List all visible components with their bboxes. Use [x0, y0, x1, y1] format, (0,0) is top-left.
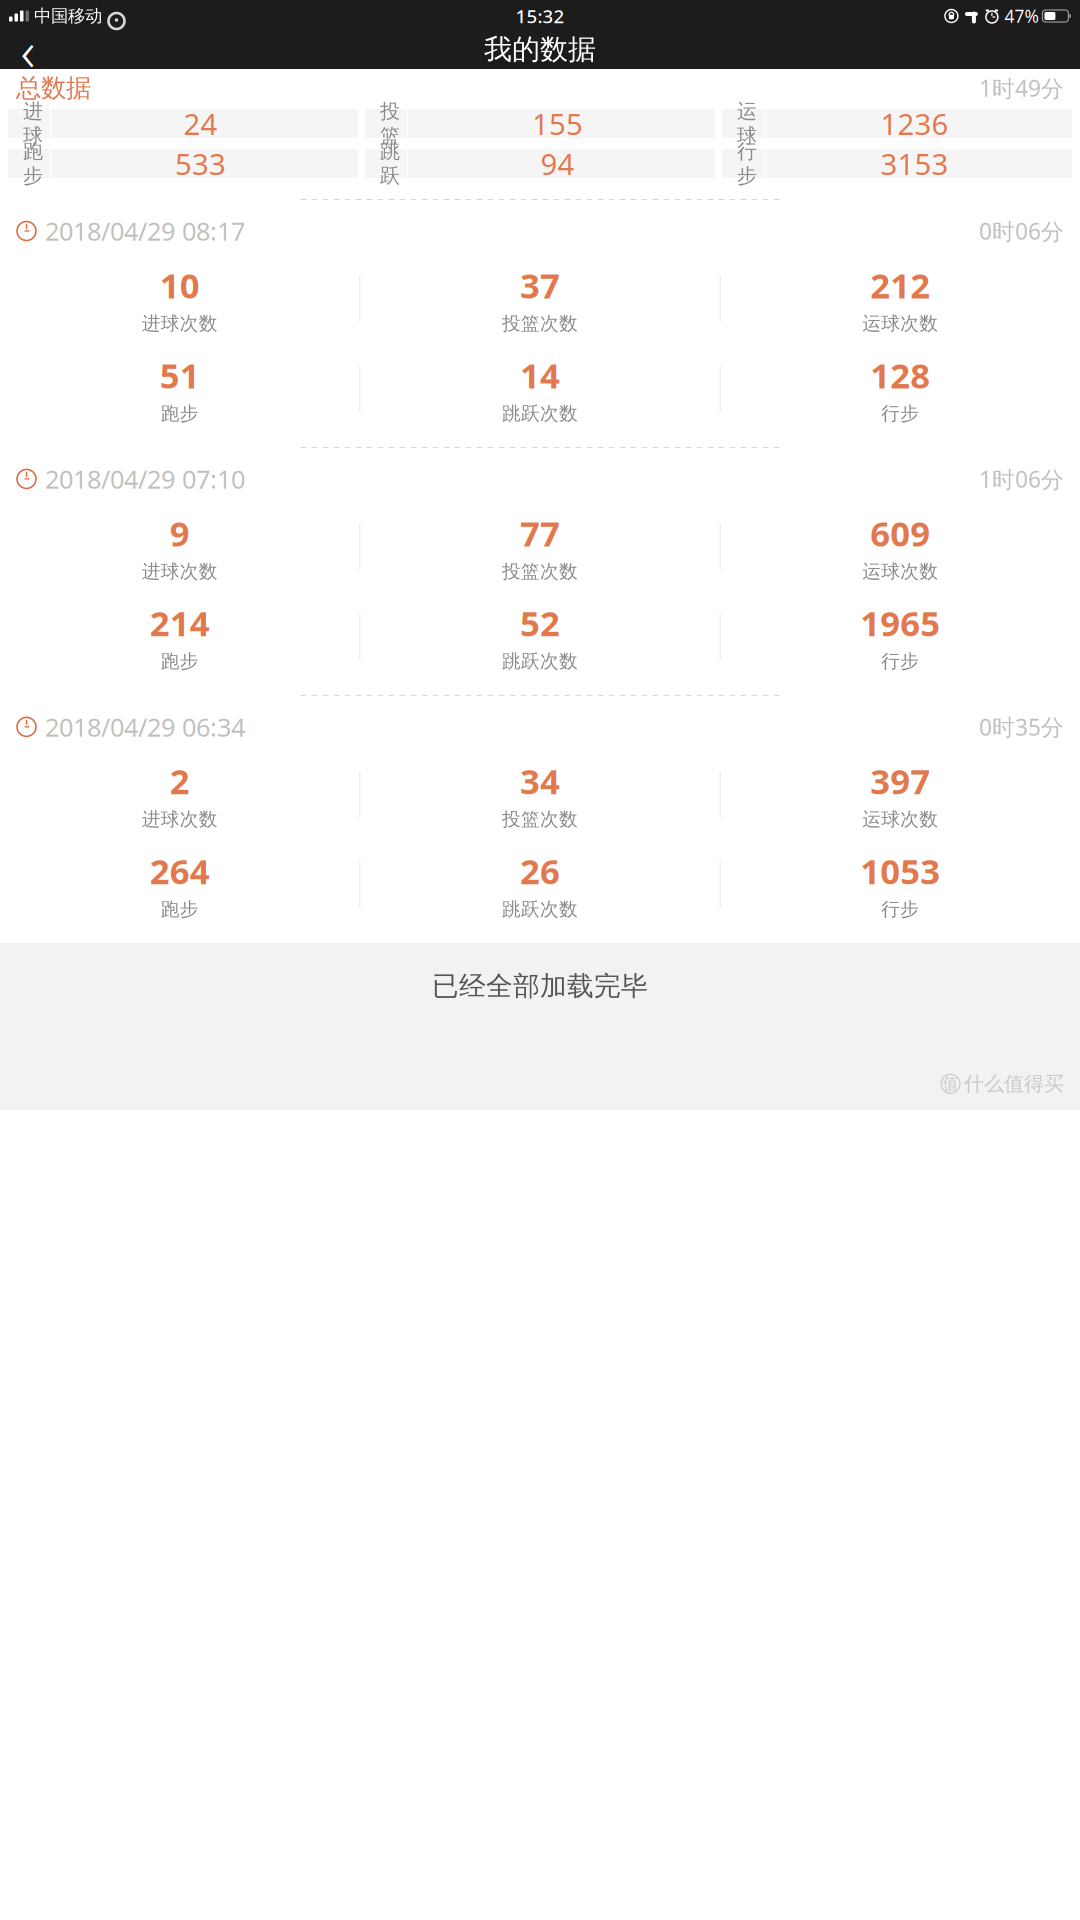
staticText: 跳跃次数 [502, 898, 578, 921]
staticText: 跑步 [23, 139, 43, 188]
staticText: 运球次数 [862, 312, 938, 335]
staticText: 投篮次数 [502, 312, 578, 335]
staticText: 跳跃次数 [502, 402, 578, 425]
button[interactable]: 返回 [0, 29, 56, 69]
staticText: 中国移动 [34, 5, 102, 27]
button[interactable]: 投篮 [365, 109, 715, 138]
staticText: 1053 [860, 848, 940, 894]
staticText: ‹ [20, 12, 35, 87]
staticText: 跳跃次数 [502, 650, 578, 673]
staticText: 投篮次数 [502, 808, 578, 831]
staticText: 2018/04/29 08:17 [45, 214, 245, 248]
staticText: 已经全部加载完毕 [432, 970, 648, 1003]
staticText: 0时35分 [979, 712, 1064, 742]
staticText: 运球次数 [862, 808, 938, 831]
staticText: 1时49分 [979, 73, 1064, 103]
button[interactable]: 2018/04/29 06:34 [0, 696, 1080, 758]
staticText: 进球次数 [142, 560, 218, 583]
button[interactable]: 行步 [722, 149, 1072, 178]
staticText: 1时06分 [979, 464, 1064, 494]
staticText: 9 [170, 510, 190, 556]
staticText: 进球次数 [142, 312, 218, 335]
staticText: 0时06分 [979, 216, 1064, 246]
staticText: 跑步 [161, 898, 199, 921]
staticText: 我的数据 [484, 32, 596, 67]
staticText: 212 [870, 262, 930, 308]
button[interactable]: 跑步 [8, 149, 358, 178]
staticText: 2018/04/29 07:10 [45, 462, 245, 496]
staticText: 52 [520, 600, 560, 646]
staticText: 1236 [880, 104, 948, 143]
staticText: 14 [520, 352, 560, 398]
staticText: 397 [870, 758, 930, 804]
staticText: 投篮次数 [502, 560, 578, 583]
staticText: 47% [1004, 4, 1038, 27]
staticText: 总数据 [16, 72, 91, 103]
staticText: 跳跃 [380, 139, 400, 188]
staticText: 1965 [860, 600, 940, 646]
staticText: 投篮 [380, 99, 400, 148]
staticText: 运球次数 [862, 560, 938, 583]
staticText: 行步 [737, 139, 757, 188]
staticText: 10 [160, 262, 200, 308]
staticText: 跑步 [161, 402, 199, 425]
staticText: 34 [520, 758, 560, 804]
staticText: 77 [520, 510, 560, 556]
button[interactable]: 进球 [8, 109, 358, 138]
staticText: 行步 [881, 402, 919, 425]
staticText: 533 [175, 144, 226, 183]
staticText: 跑步 [161, 650, 199, 673]
staticText: 2018/04/29 06:34 [45, 710, 245, 744]
staticText: 264 [150, 848, 210, 894]
staticText: 214 [150, 600, 210, 646]
staticText: 51 [160, 352, 200, 398]
staticText: 什么值得买 [964, 1071, 1064, 1096]
staticText: 行步 [881, 650, 919, 673]
button[interactable]: 运球 [722, 109, 1072, 138]
staticText: 进球次数 [142, 808, 218, 831]
button[interactable]: 跳跃 [365, 149, 715, 178]
staticText: 运球 [737, 99, 757, 148]
staticText: 94 [540, 144, 574, 183]
staticText: 值 [942, 1074, 958, 1094]
staticText: 3153 [880, 144, 948, 183]
staticText: 15:32 [515, 4, 564, 28]
staticText: 37 [520, 262, 560, 308]
staticText: 26 [520, 848, 560, 894]
button[interactable]: 2018/04/29 07:10 [0, 448, 1080, 510]
button[interactable]: 2018/04/29 08:17 [0, 200, 1080, 262]
staticText: 609 [870, 510, 930, 556]
staticText: 进球 [23, 99, 43, 148]
staticText: 2 [170, 758, 190, 804]
staticText: 行步 [881, 898, 919, 921]
staticText: 155 [532, 104, 583, 143]
staticText: 24 [183, 104, 217, 143]
staticText: 128 [870, 352, 930, 398]
